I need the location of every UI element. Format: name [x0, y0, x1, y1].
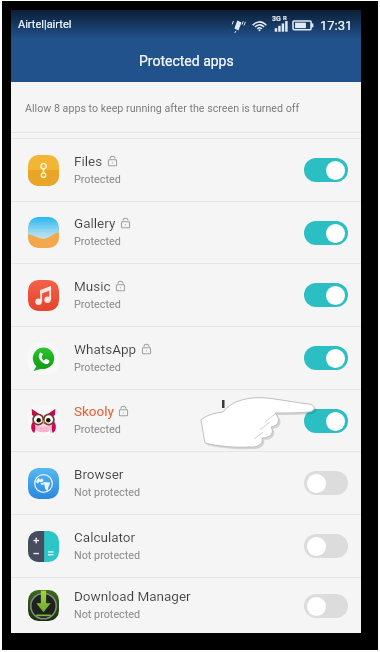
button[interactable]: Not protected, off — [304, 534, 348, 558]
staticText: Protected — [74, 423, 121, 436]
staticText: 3G — [272, 15, 281, 23]
staticText: Allow 8 apps to keep running after the s… — [25, 102, 300, 115]
button[interactable]: Not protected, off — [304, 594, 348, 618]
staticText: Protected — [74, 361, 121, 374]
staticText: Not protected — [74, 486, 141, 499]
button[interactable]: WhatsApp — [11, 327, 361, 389]
staticText: Download Manager — [74, 588, 191, 604]
staticText: Not protected — [74, 549, 141, 562]
staticText: Airtel|airtel — [18, 18, 72, 31]
staticText: WhatsApp — [74, 341, 137, 357]
button[interactable]: Music — [11, 264, 361, 326]
staticText: Not protected — [74, 608, 141, 621]
staticText: Calculator — [74, 529, 136, 545]
button[interactable]: Protected, on — [304, 221, 348, 245]
button[interactable]: Protected, on — [304, 158, 348, 182]
staticText: Protected — [74, 173, 121, 186]
button[interactable]: Protected, on — [304, 409, 348, 433]
button[interactable]: Download Manager — [11, 578, 361, 633]
staticText: Protected apps — [139, 53, 234, 69]
staticText: R — [283, 14, 287, 21]
staticText: 17:31 — [320, 18, 353, 33]
button[interactable]: Files — [11, 139, 361, 201]
button[interactable]: Skooly — [11, 390, 361, 451]
staticText: Browser — [74, 466, 124, 482]
button[interactable]: Not protected, off — [304, 471, 348, 495]
staticText: Files — [74, 153, 103, 169]
staticText: Protected — [74, 235, 121, 248]
staticText: Gallery — [74, 215, 116, 231]
staticText: Protected — [74, 298, 121, 311]
staticText: Music — [74, 278, 111, 294]
staticText: Skooly — [74, 403, 114, 419]
button[interactable]: Protected, on — [304, 346, 348, 370]
button[interactable]: Browser — [11, 452, 361, 514]
button[interactable]: Gallery — [11, 202, 361, 263]
button[interactable]: Protected, on — [304, 283, 348, 307]
button[interactable]: Calculator — [11, 515, 361, 577]
